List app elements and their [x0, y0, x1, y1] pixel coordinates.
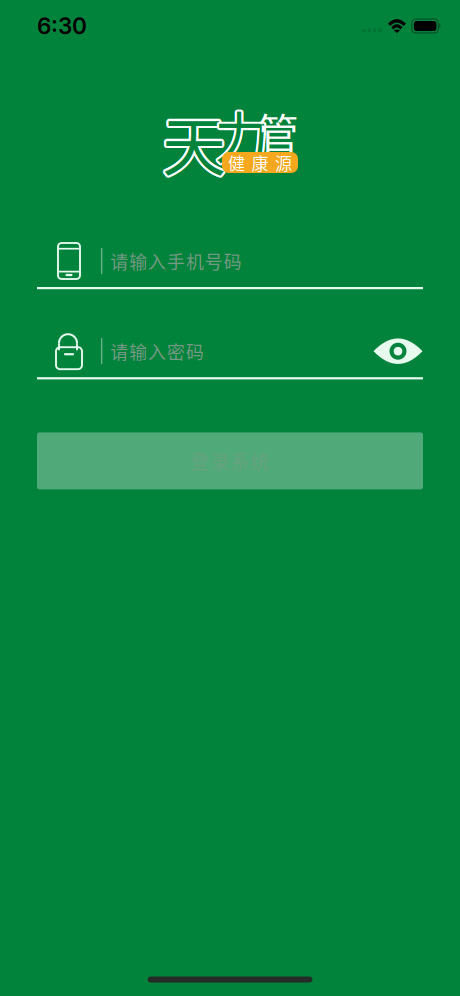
staticText: 手	[167, 248, 185, 274]
button[interactable]: Show password	[373, 336, 423, 366]
staticText: 入	[148, 338, 166, 364]
staticText: 天	[160, 95, 224, 187]
staticText: 码	[186, 338, 204, 364]
staticText: 力	[217, 94, 272, 174]
staticText: 天	[163, 94, 227, 186]
staticText: 录	[210, 447, 229, 475]
staticText: 码	[224, 248, 242, 274]
staticText: 密	[167, 338, 185, 364]
staticText: 力	[214, 96, 269, 176]
staticText: 力	[214, 92, 269, 172]
staticText: 天	[160, 96, 224, 188]
staticText: 统	[250, 447, 269, 475]
staticText: 力	[213, 94, 268, 173]
staticText: 天	[160, 94, 224, 187]
staticText: 天	[162, 98, 226, 191]
staticText: 天	[164, 96, 228, 188]
staticText: 力	[213, 93, 268, 172]
staticText: 健	[228, 150, 245, 175]
staticText: 天	[164, 97, 228, 190]
staticText: 输	[129, 338, 147, 364]
staticText: 力	[216, 96, 271, 175]
staticText: 力	[216, 94, 271, 173]
staticText: 力	[213, 96, 268, 175]
staticText: 系	[230, 447, 249, 475]
staticText: 力	[214, 92, 269, 171]
staticText: 源	[275, 150, 292, 175]
staticText: 力	[214, 94, 269, 174]
staticText: 入	[148, 248, 166, 274]
staticText: 天	[164, 95, 228, 187]
staticText: 号	[205, 248, 223, 274]
staticText: 天	[160, 97, 224, 190]
staticText: 天	[163, 98, 227, 190]
staticText: 力	[216, 95, 271, 174]
staticText: 天	[162, 96, 226, 188]
staticText: 力	[215, 92, 270, 172]
staticText: 力	[213, 95, 268, 174]
staticText: 机	[186, 248, 204, 274]
staticText: 力	[215, 96, 270, 176]
staticText: 天	[164, 94, 228, 187]
staticText: 力	[214, 96, 269, 176]
staticText: 管	[257, 101, 298, 160]
button[interactable]: 登	[37, 432, 423, 489]
staticText: 6:30	[37, 12, 87, 40]
staticText: 请	[110, 338, 128, 364]
staticText: 天	[164, 96, 228, 189]
staticText: 登	[190, 447, 209, 475]
staticText: 输	[129, 248, 147, 274]
staticText: 天	[162, 93, 226, 186]
staticText: 天	[161, 98, 225, 190]
staticText: 请	[110, 248, 128, 274]
staticText: 天	[161, 94, 225, 186]
staticText: 天	[160, 96, 224, 189]
staticText: 康	[251, 150, 268, 175]
staticText: 力	[216, 93, 271, 172]
staticText: 力	[212, 94, 267, 174]
